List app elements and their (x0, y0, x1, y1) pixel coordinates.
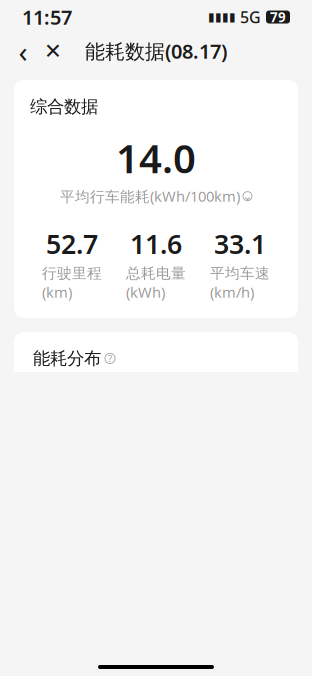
staticText: 平均行车能耗(kWh/100km) (60, 186, 240, 206)
staticText: 能耗数据(08.17) (85, 38, 227, 64)
staticText: 总耗电量(kWh) (126, 264, 186, 302)
staticText: 79 (270, 8, 286, 26)
staticText: 综合数据 (30, 96, 98, 117)
staticText: 11.6 (130, 226, 182, 261)
staticText: 52.7 (46, 226, 98, 261)
staticText: 行驶里程(km) (42, 264, 102, 302)
staticText: ‹ (18, 31, 27, 70)
button[interactable]: Close (38, 34, 68, 68)
staticText: 5G (240, 6, 261, 28)
staticText: 14.0 (116, 131, 196, 184)
staticText: 能耗分布 (33, 348, 101, 369)
staticText: ? (108, 352, 112, 365)
staticText: 11:57 (22, 4, 72, 30)
staticText: 33.1 (214, 226, 266, 261)
staticText: ⌄ (242, 189, 252, 203)
staticText: 平均车速(km/h) (210, 264, 270, 302)
staticText: ▮▮▮▮ (208, 10, 236, 24)
button[interactable]: Back (8, 34, 38, 68)
staticText: ✕ (44, 39, 62, 63)
